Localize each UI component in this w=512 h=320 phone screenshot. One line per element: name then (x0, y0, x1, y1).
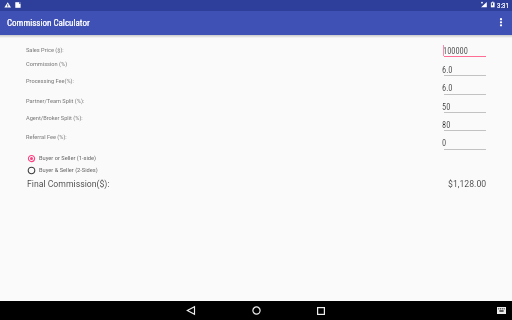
staticText: 50 (442, 102, 451, 112)
staticText: Referral Fee (%): (26, 134, 67, 141)
staticText: 100000 (443, 46, 468, 56)
staticText: Buyer or Seller (1-side) (39, 155, 97, 162)
staticText: Partner/Team Split (%): (26, 98, 85, 105)
button[interactable]: Buyer or Seller (1-side) (26, 153, 97, 164)
button[interactable]: 50 (444, 100, 486, 114)
staticText: 80 (442, 120, 451, 130)
button[interactable]: 0 (444, 136, 486, 150)
staticText: 3:31 (497, 2, 510, 10)
button[interactable]: 80 (444, 118, 486, 132)
button[interactable]: Home (244, 301, 268, 320)
staticText: Commission (%) (26, 61, 68, 68)
staticText: Final Commission($): (27, 179, 110, 189)
staticText: Commission Calculator (7, 18, 90, 29)
staticText: 0 (442, 138, 447, 148)
staticText: 6.0 (442, 65, 453, 75)
button[interactable]: 100000 (444, 44, 486, 58)
button[interactable]: More options (490, 12, 512, 34)
button[interactable]: 6.0 (444, 81, 486, 95)
staticText: Processing Fee(%): (26, 78, 74, 85)
staticText: Buyer & Seller (2-Sides) (39, 167, 98, 174)
staticText: Agent/Broker Split (%): (26, 115, 83, 122)
staticText: Sales Price ($): (26, 47, 64, 54)
button[interactable]: Switch keyboard (494, 301, 509, 320)
button[interactable]: Recent apps (309, 301, 333, 320)
staticText: 6.0 (442, 83, 453, 93)
button[interactable]: 6.0 (444, 63, 486, 77)
button[interactable]: Back (179, 301, 203, 320)
button[interactable]: Buyer & Seller (2-Sides) (26, 165, 98, 176)
staticText: $1,128.00 (448, 179, 487, 189)
